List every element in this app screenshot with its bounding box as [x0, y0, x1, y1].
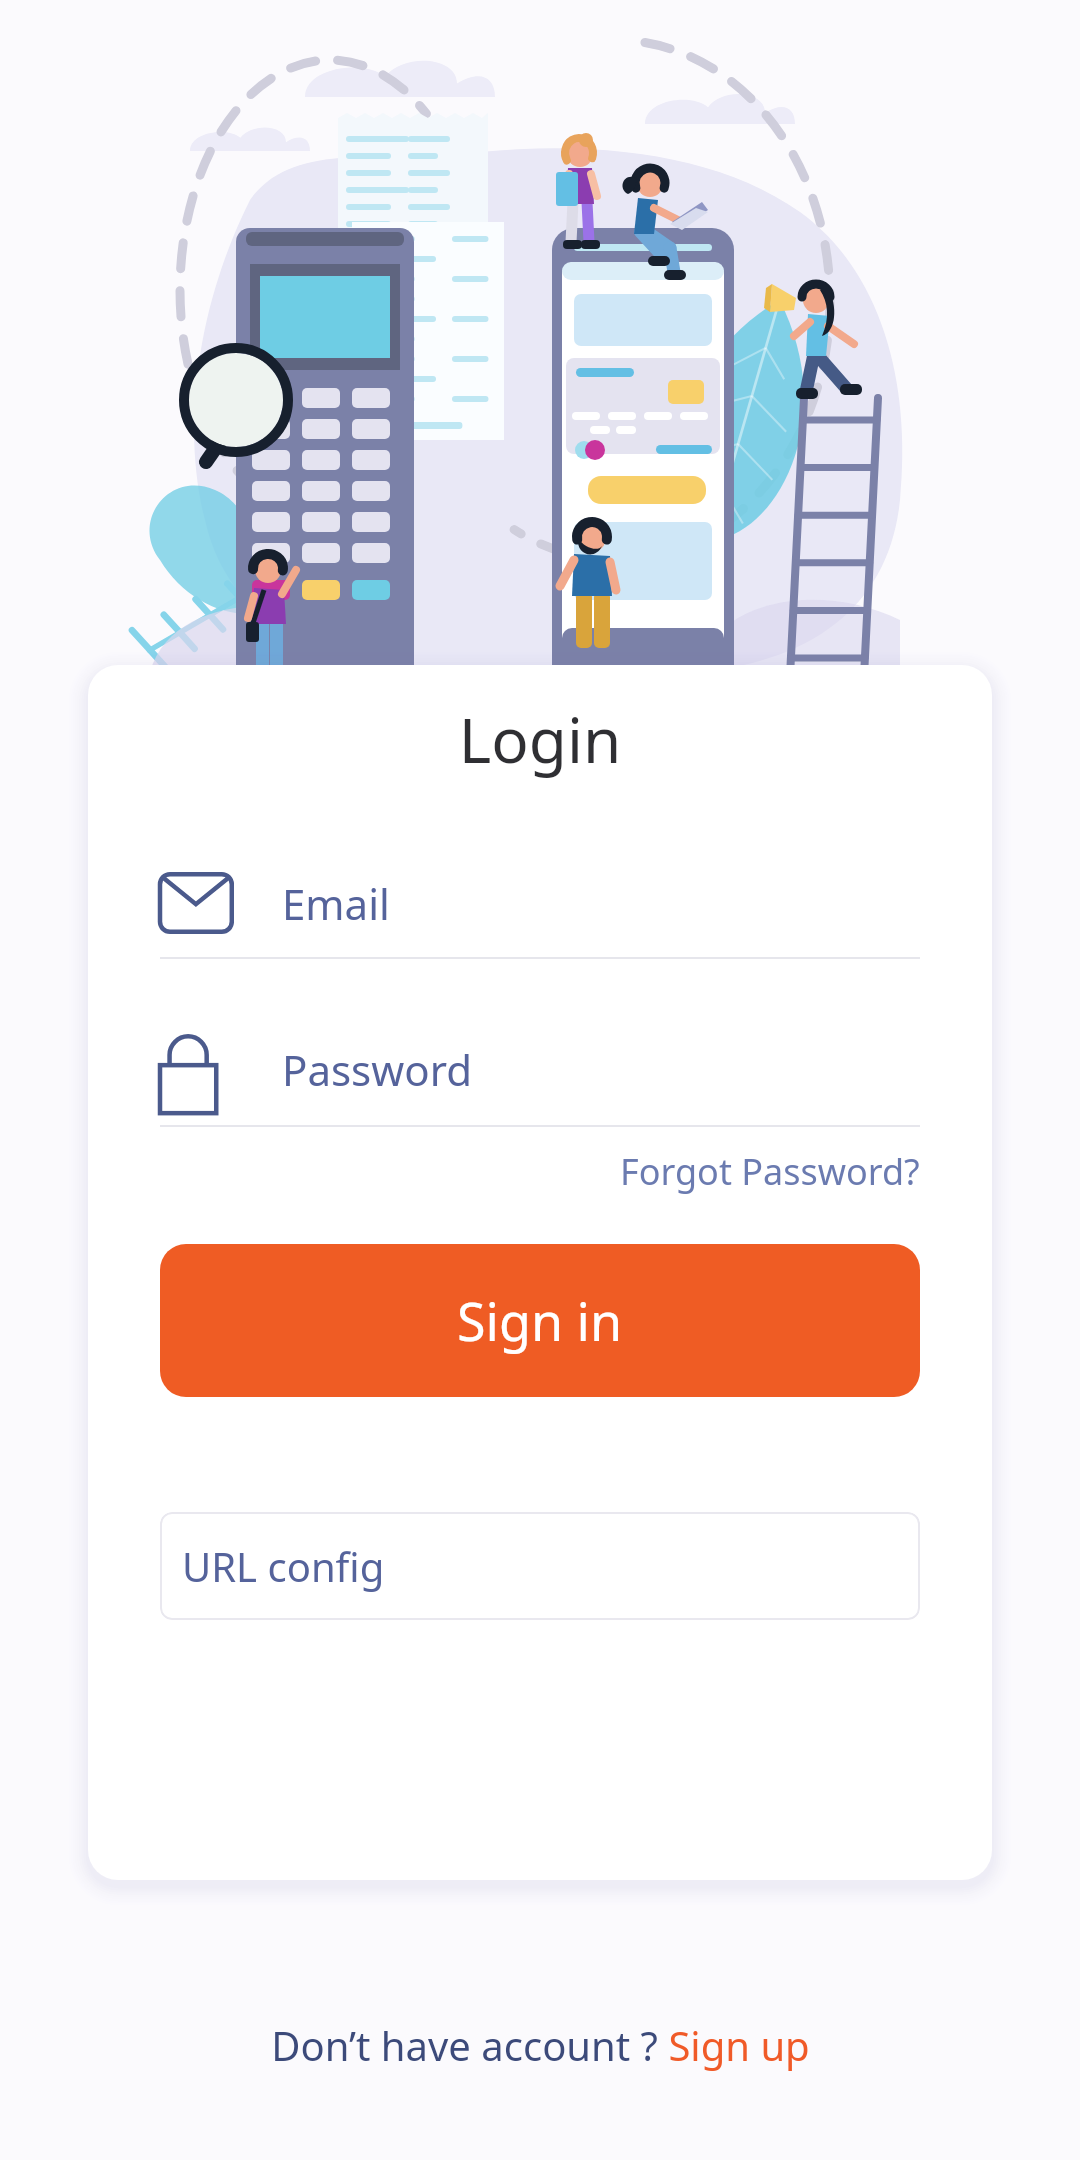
- staticText: URL config: [182, 1539, 385, 1593]
- button[interactable]: Email: [160, 853, 920, 959]
- button[interactable]: Password: [160, 1017, 920, 1127]
- staticText: Password: [282, 1041, 472, 1098]
- staticText: Don’t have account ? Sign up: [271, 2018, 810, 2072]
- staticText: Email: [282, 875, 390, 932]
- button[interactable]: Sign in: [160, 1244, 920, 1397]
- staticText: Sign in: [457, 1285, 623, 1356]
- button[interactable]: Don’t have account ? Sign up: [247, 2008, 834, 2082]
- staticText: Login: [88, 697, 992, 781]
- staticText: Forgot Password?: [620, 1147, 920, 1196]
- button[interactable]: Forgot Password?: [620, 1141, 920, 1202]
- button[interactable]: URL config: [160, 1512, 920, 1620]
